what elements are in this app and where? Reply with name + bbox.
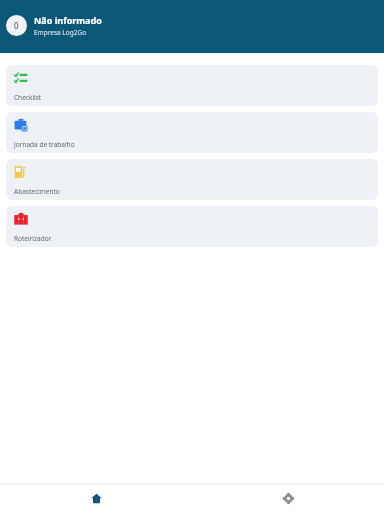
staticText: Empresa Log2Go [34,28,87,37]
button[interactable]: Home [0,484,192,512]
button[interactable]: 0 [6,14,384,37]
staticText: Abastecimento [14,187,60,196]
button[interactable]: Checklist [6,65,378,106]
staticText: Não informado [34,14,102,26]
button[interactable]: Jornada de trabalho [6,112,378,153]
staticText: Jornada de trabalho [14,140,75,149]
staticText: Roteirizador [14,234,52,243]
button[interactable]: Settings [192,484,384,512]
staticText: Checklist [14,93,42,102]
button[interactable]: Roteirizador [6,206,378,247]
staticText: 0 [14,20,19,31]
button[interactable]: Abastecimento [6,159,378,200]
